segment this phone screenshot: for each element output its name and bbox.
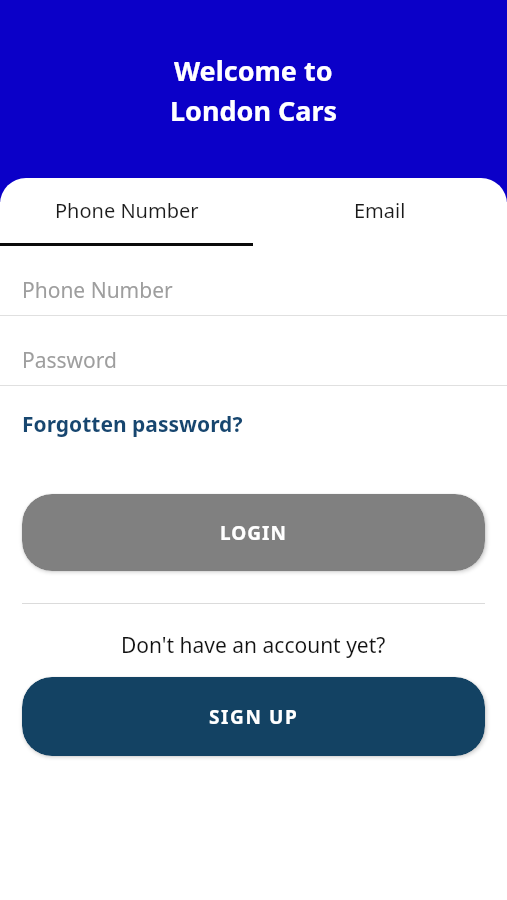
- button[interactable]: Forgotten password?: [22, 410, 243, 439]
- button[interactable]: Phone Number: [0, 178, 253, 243]
- staticText: Password: [22, 346, 117, 375]
- staticText: Phone Number: [55, 197, 199, 224]
- staticText: LOGIN: [220, 520, 287, 546]
- staticText: Phone Number: [22, 276, 173, 305]
- staticText: SIGN UP: [209, 704, 299, 730]
- button[interactable]: LOGIN: [22, 494, 485, 571]
- staticText: Welcome to: [174, 52, 333, 89]
- button[interactable]: Email: [253, 178, 507, 243]
- staticText: Email: [354, 197, 406, 224]
- staticText: Forgotten password?: [22, 410, 243, 439]
- staticText: London Cars: [170, 92, 338, 129]
- button[interactable]: SIGN UP: [22, 677, 485, 756]
- staticText: Don't have an account yet?: [121, 631, 386, 660]
